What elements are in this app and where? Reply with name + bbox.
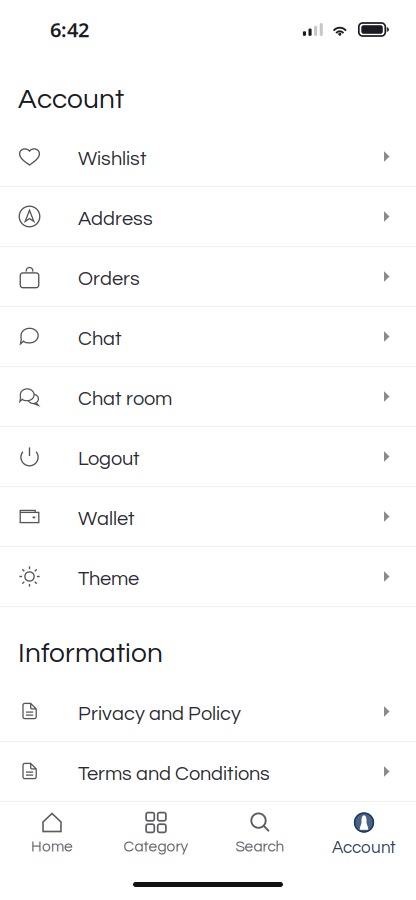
button[interactable]: Wishlist	[0, 127, 416, 187]
button[interactable]: Home	[0, 802, 104, 869]
button[interactable]: Account	[312, 802, 416, 869]
staticText: Theme	[78, 569, 139, 589]
staticText: Chat room	[78, 389, 172, 409]
button[interactable]: Address	[0, 187, 416, 247]
staticText: Logout	[78, 449, 140, 469]
button[interactable]: Orders	[0, 247, 416, 307]
button[interactable]: Chat	[0, 307, 416, 367]
staticText: Chat	[78, 329, 122, 349]
staticText: Account	[18, 85, 124, 114]
staticText: 6:42	[50, 16, 89, 43]
staticText: Privacy and Policy	[78, 704, 241, 724]
staticText: Orders	[78, 269, 140, 289]
button[interactable]: Search	[208, 802, 312, 869]
staticText: Wallet	[78, 509, 135, 529]
staticText: Address	[78, 209, 153, 229]
button[interactable]: Terms and Conditions	[0, 742, 416, 802]
staticText: Information	[18, 639, 163, 668]
button[interactable]: Chat room	[0, 367, 416, 427]
button[interactable]: Category	[104, 802, 208, 869]
button[interactable]: Wallet	[0, 487, 416, 547]
staticText: Search	[235, 839, 284, 855]
staticText: Home	[31, 839, 73, 855]
staticText: Terms and Conditions	[78, 764, 270, 784]
staticText: Wishlist	[78, 149, 147, 169]
staticText: Account	[332, 839, 396, 857]
button[interactable]: Theme	[0, 547, 416, 607]
button[interactable]: Privacy and Policy	[0, 682, 416, 742]
staticText: Category	[123, 839, 188, 855]
button[interactable]: Logout	[0, 427, 416, 487]
